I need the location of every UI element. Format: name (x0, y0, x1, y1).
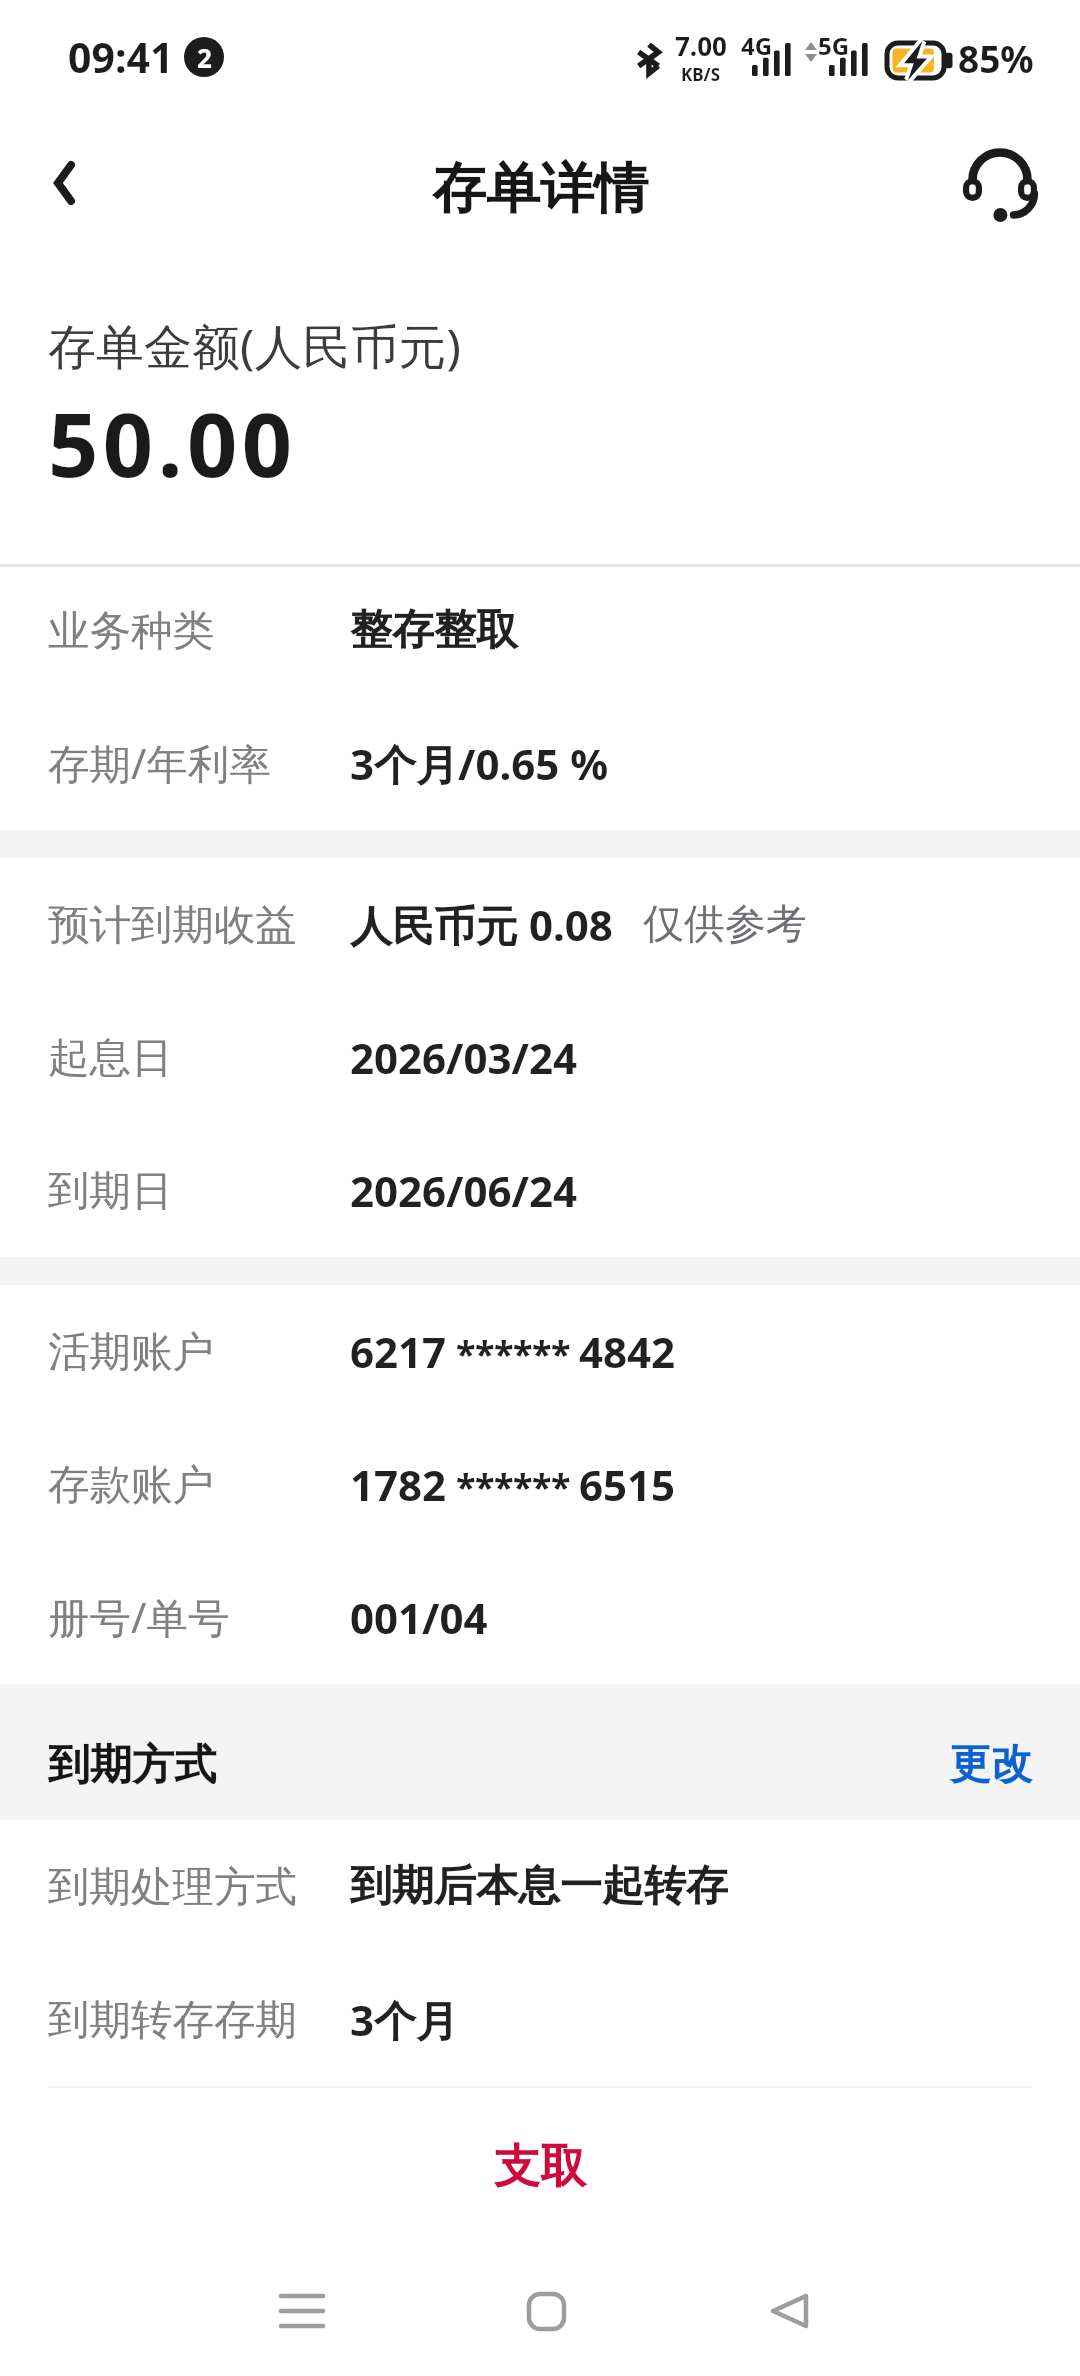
staticText: ****** (456, 1329, 571, 1378)
staticText: 2026/06/24 (350, 1162, 578, 1219)
staticText: 4842 (579, 1323, 676, 1380)
button[interactable]: 起息日 (0, 991, 1080, 1124)
button[interactable]: Back (16, 135, 112, 231)
button[interactable]: 到期转存存期 (0, 1953, 1080, 2086)
button[interactable]: 更改 (950, 1739, 1032, 1791)
staticText: 50.00 (48, 383, 297, 503)
button[interactable]: Recents (232, 2261, 372, 2361)
staticText: 存单金额(人民币元) (48, 313, 461, 379)
staticText: KB/S (681, 63, 721, 86)
staticText: 业务种类 (48, 605, 214, 657)
staticText: 1782 (350, 1456, 447, 1513)
staticText: 到期转存存期 (48, 1994, 297, 2046)
button[interactable]: 业务种类 (0, 564, 1080, 697)
staticText: 册号/单号 (48, 1589, 230, 1646)
button[interactable]: 支取 (0, 2088, 1080, 2246)
staticText: 2026/03/24 (350, 1029, 578, 1086)
button[interactable]: Home (476, 2261, 616, 2361)
staticText: 到期后本息一起转存 (350, 1860, 728, 1913)
staticText: 到期方式 (48, 1739, 216, 1792)
staticText: 存款账户 (48, 1459, 214, 1511)
staticText: 7.00 (675, 28, 727, 63)
staticText: 人民币元 0.08 (350, 896, 613, 953)
button[interactable]: 到期处理方式 (0, 1820, 1080, 1953)
button[interactable]: 存款账户 (0, 1418, 1080, 1551)
button[interactable]: 存期/年利率 (0, 697, 1080, 830)
staticText: 5G (818, 29, 850, 62)
button[interactable]: 到期日 (0, 1124, 1080, 1257)
staticText: 到期处理方式 (48, 1861, 297, 1913)
button[interactable]: 预计到期收益 (0, 858, 1080, 991)
staticText: 09:41 (68, 29, 174, 85)
staticText: 6515 (579, 1456, 676, 1513)
staticText: 活期账户 (48, 1326, 214, 1378)
staticText: 预计到期收益 (48, 899, 297, 951)
button[interactable]: 活期账户 (0, 1285, 1080, 1418)
staticText: 6217 (350, 1323, 447, 1380)
staticText: 支取 (494, 2138, 586, 2196)
staticText: 001/04 (350, 1589, 488, 1646)
staticText: 存单详情 (432, 155, 648, 223)
button[interactable]: Customer service (948, 134, 1052, 238)
staticText: 整存整取 (350, 604, 518, 657)
staticText: 4G (741, 29, 773, 62)
staticText: 2 (197, 40, 212, 75)
staticText: 存期/年利率 (48, 735, 271, 792)
button[interactable]: Back (719, 2261, 859, 2361)
staticText: 到期日 (48, 1165, 173, 1217)
staticText: 更改 (950, 1739, 1032, 1791)
button[interactable]: 册号/单号 (0, 1551, 1080, 1684)
staticText: ****** (456, 1462, 571, 1511)
staticText: 起息日 (48, 1032, 173, 1084)
staticText: 3个月/0.65 % (350, 735, 609, 792)
staticText: 仅供参考 (643, 899, 807, 951)
staticText: 3个月 (350, 1991, 459, 2048)
staticText: 85% (958, 33, 1034, 83)
